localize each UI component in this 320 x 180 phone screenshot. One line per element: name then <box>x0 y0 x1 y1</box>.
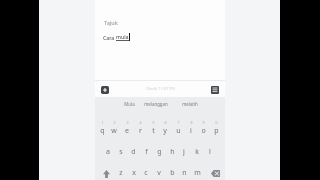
staticText: l <box>209 147 211 156</box>
button[interactable] <box>114 163 127 180</box>
staticText: 0 <box>215 120 218 125</box>
button[interactable] <box>140 142 153 161</box>
staticText: o <box>201 126 206 135</box>
button[interactable] <box>121 121 134 140</box>
button[interactable]: Mula <box>108 97 150 111</box>
staticText: a <box>106 147 110 156</box>
staticText: g <box>157 147 162 156</box>
button[interactable] <box>210 121 223 140</box>
button[interactable] <box>172 121 185 140</box>
button[interactable] <box>102 142 115 161</box>
staticText: i <box>190 126 192 135</box>
button[interactable] <box>165 142 178 161</box>
staticText: melanggan <box>144 101 168 107</box>
button[interactable] <box>140 163 153 180</box>
button[interactable] <box>114 142 127 161</box>
button[interactable] <box>165 163 178 180</box>
staticText: Cara <box>103 34 115 41</box>
staticText: Tajuk <box>104 19 118 26</box>
staticText: e <box>125 126 129 135</box>
staticText: r <box>139 126 142 135</box>
staticText: y <box>163 126 167 135</box>
staticText: 2 <box>113 120 116 125</box>
button[interactable] <box>146 121 159 140</box>
button[interactable]: melanggan <box>135 97 177 111</box>
button[interactable] <box>152 142 165 161</box>
button[interactable]: Add <box>101 86 109 94</box>
staticText: Diedit 11:07 PG <box>146 86 175 91</box>
button[interactable] <box>133 121 146 140</box>
staticText: x <box>132 168 136 177</box>
button[interactable] <box>127 163 140 180</box>
staticText: p <box>214 126 219 135</box>
button[interactable] <box>108 121 121 140</box>
button[interactable] <box>159 121 172 140</box>
staticText: mula <box>116 33 129 40</box>
staticText: t <box>152 126 155 135</box>
button[interactable]: Tajuk <box>104 19 118 26</box>
button[interactable]: Cara <box>103 33 130 41</box>
staticText: n <box>182 168 187 177</box>
staticText: melatih <box>182 101 198 107</box>
button[interactable] <box>178 163 191 180</box>
staticText: c <box>144 168 148 177</box>
staticText: s <box>119 147 123 156</box>
button[interactable] <box>191 163 204 180</box>
button[interactable] <box>191 142 204 161</box>
staticText: j <box>183 147 185 156</box>
staticText: q <box>100 126 105 135</box>
button[interactable]: Shift <box>98 164 114 180</box>
staticText: 4 <box>139 120 142 125</box>
button[interactable]: Backspace <box>207 164 223 180</box>
staticText: z <box>119 168 123 177</box>
staticText: 9 <box>202 120 205 125</box>
staticText: h <box>170 147 175 156</box>
button[interactable] <box>184 121 197 140</box>
button[interactable]: More options <box>211 86 219 94</box>
button[interactable] <box>153 163 166 180</box>
staticText: f <box>145 147 148 156</box>
staticText: w <box>111 126 117 135</box>
staticText: m <box>194 168 201 177</box>
staticText: 6 <box>164 120 167 125</box>
button[interactable] <box>127 142 140 161</box>
staticText: 1 <box>101 120 104 125</box>
staticText: 5 <box>152 120 155 125</box>
staticText: b <box>170 168 175 177</box>
staticText: Mula <box>124 101 135 107</box>
button[interactable] <box>178 142 191 161</box>
button[interactable]: melatih <box>169 97 211 111</box>
button[interactable] <box>197 121 210 140</box>
button[interactable] <box>95 121 108 140</box>
staticText: d <box>131 147 136 156</box>
staticText: 8 <box>190 120 193 125</box>
staticText: v <box>157 168 161 177</box>
staticText: 3 <box>126 120 129 125</box>
staticText: u <box>176 126 181 135</box>
button[interactable] <box>203 142 216 161</box>
staticText: 7 <box>177 120 180 125</box>
staticText: k <box>195 147 199 156</box>
